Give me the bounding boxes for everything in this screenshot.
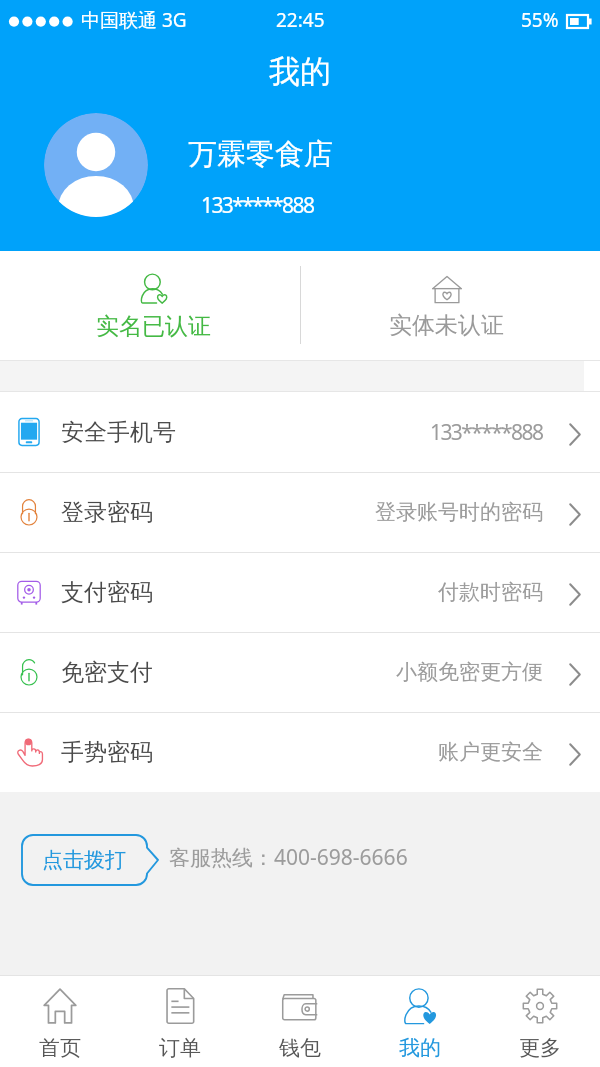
staticText: 实名已认证: [96, 312, 211, 341]
button[interactable]: 免密支付: [0, 632, 600, 712]
staticText: 实体未认证: [389, 311, 504, 340]
button[interactable]: 登录密码: [0, 472, 600, 552]
button[interactable]: 支付密码: [0, 552, 600, 632]
staticText: 小额免密更方便: [396, 659, 543, 685]
button[interactable]: 我的: [360, 976, 480, 1067]
button[interactable]: 订单: [120, 976, 240, 1067]
staticText: 免密支付: [61, 658, 153, 687]
button[interactable]: 安全手机号: [0, 392, 600, 472]
staticText: 133*****888: [201, 191, 314, 220]
staticText: 点击拨打: [42, 847, 126, 873]
staticText: 付款时密码: [438, 579, 543, 605]
staticText: 账户更安全: [438, 739, 543, 765]
staticText: 钱包: [279, 1035, 321, 1061]
staticText: 万霖零食店: [188, 136, 333, 173]
button[interactable]: 实名已认证: [0, 251, 300, 360]
staticText: 更多: [519, 1035, 561, 1061]
button[interactable]: 实体未认证: [300, 251, 600, 360]
button[interactable]: 点击拨打: [21, 834, 159, 886]
staticText: 订单: [159, 1035, 201, 1061]
staticText: 登录账号时的密码: [375, 499, 543, 525]
staticText: 安全手机号: [61, 418, 176, 447]
staticText: 登录密码: [61, 498, 153, 527]
staticText: 133*****888: [430, 418, 543, 447]
staticText: 中国联通 3G: [81, 7, 187, 33]
staticText: 我的: [269, 52, 331, 91]
button[interactable]: 更多: [480, 976, 600, 1067]
button[interactable]: 首页: [0, 976, 120, 1067]
staticText: 客服热线：400-698-6666: [169, 843, 408, 872]
staticText: 首页: [39, 1035, 81, 1061]
staticText: 支付密码: [61, 578, 153, 607]
button[interactable]: 手势密码: [0, 712, 600, 792]
staticText: 55%: [521, 7, 559, 33]
staticText: 22:45: [276, 7, 325, 33]
staticText: 我的: [399, 1035, 441, 1061]
button[interactable]: 钱包: [240, 976, 360, 1067]
staticText: 手势密码: [61, 738, 153, 767]
